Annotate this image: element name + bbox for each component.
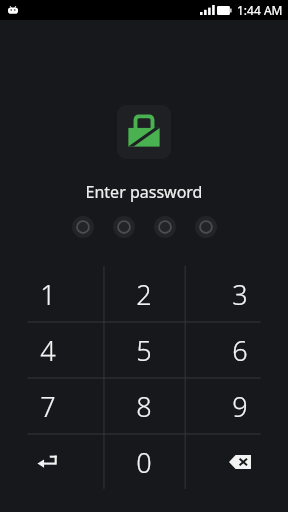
staticText: 0 bbox=[136, 444, 152, 481]
button[interactable]: 8 bbox=[96, 378, 192, 434]
button[interactable]: Enter bbox=[0, 434, 96, 490]
button[interactable]: 9 bbox=[192, 378, 288, 434]
button[interactable]: 3 bbox=[192, 266, 288, 322]
staticText: 2 bbox=[136, 276, 152, 313]
button[interactable]: 2 bbox=[96, 266, 192, 322]
button[interactable]: 0 bbox=[96, 434, 192, 490]
staticText: 4 bbox=[40, 332, 56, 369]
staticText: 9 bbox=[232, 388, 248, 425]
button[interactable]: 4 bbox=[0, 322, 96, 378]
staticText: 3 bbox=[232, 276, 248, 313]
staticText: 8 bbox=[136, 388, 152, 425]
button[interactable]: 7 bbox=[0, 378, 96, 434]
button[interactable]: Backspace bbox=[192, 434, 288, 490]
staticText: Enter password bbox=[0, 181, 288, 203]
staticText: 6 bbox=[232, 332, 248, 369]
staticText: 7 bbox=[40, 388, 56, 425]
staticText: 5 bbox=[136, 332, 152, 369]
button[interactable]: 6 bbox=[192, 322, 288, 378]
staticText: 1 bbox=[40, 276, 56, 313]
button[interactable]: 1 bbox=[0, 266, 96, 322]
staticText: 1:44 AM bbox=[237, 2, 283, 18]
button[interactable]: 5 bbox=[96, 322, 192, 378]
